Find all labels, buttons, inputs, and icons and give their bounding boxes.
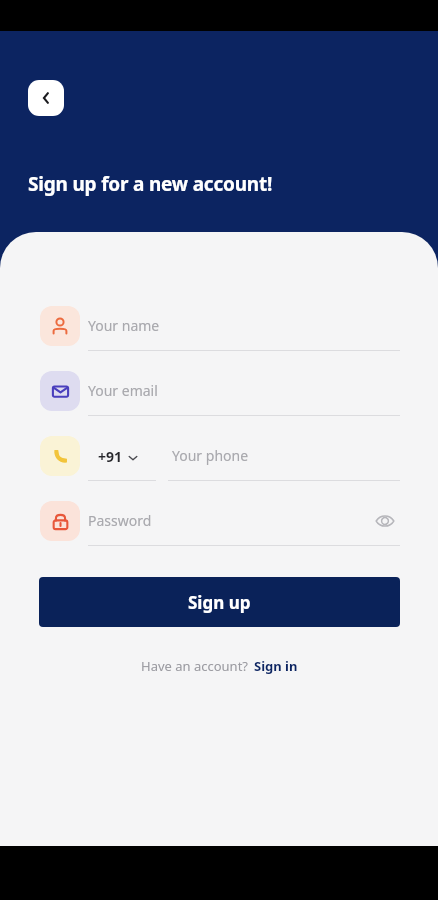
button[interactable]: Your phone [168,431,400,481]
staticText: Password [88,511,152,530]
staticText: Your name [88,316,160,335]
button[interactable]: +91 [88,431,156,481]
staticText: Sign up [188,591,251,614]
staticText: Your email [88,381,158,400]
staticText: Have an account? [141,657,248,675]
button[interactable]: Your name [88,301,400,351]
staticText: Sign in [254,657,298,675]
button[interactable]: Sign up [39,577,400,627]
staticText: +91 [98,447,123,466]
button[interactable]: Show password [370,506,400,536]
staticText: Your phone [172,446,249,465]
staticText: Sign up for a new account! [28,171,273,197]
button[interactable]: Password [88,496,400,546]
button[interactable]: Sign in [254,657,298,675]
button[interactable]: Your email [88,366,400,416]
button[interactable]: Back [28,80,64,116]
